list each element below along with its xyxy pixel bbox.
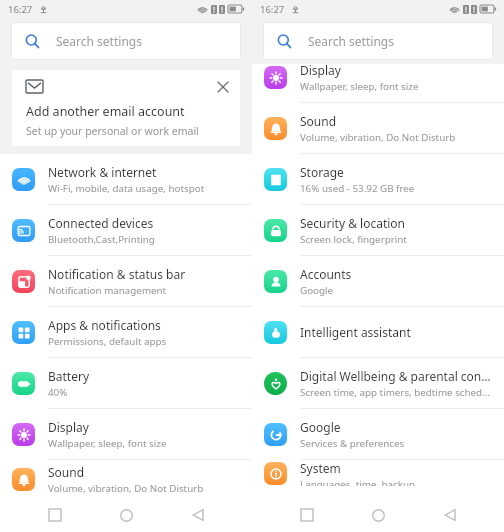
staticText: Bluetooth,Cast,Printing bbox=[48, 233, 155, 246]
button[interactable]: Search settings bbox=[11, 22, 241, 60]
staticText: Sound bbox=[300, 113, 337, 129]
button[interactable]: Display bbox=[252, 52, 504, 102]
button[interactable]: Home bbox=[109, 498, 143, 532]
staticText: Services & preferences bbox=[300, 437, 405, 450]
staticText: Google bbox=[300, 419, 341, 435]
button[interactable]: Security & location bbox=[252, 205, 504, 255]
button[interactable]: Recents bbox=[290, 498, 324, 532]
staticText: Accounts bbox=[300, 266, 352, 282]
staticText: 16:27 bbox=[8, 3, 33, 16]
button[interactable]: Accounts bbox=[252, 256, 504, 306]
staticText: Intelligent assistant bbox=[300, 324, 411, 340]
button[interactable]: Search settings bbox=[263, 22, 493, 60]
button[interactable]: Intelligent assistant bbox=[252, 307, 504, 357]
button[interactable]: Back bbox=[433, 498, 467, 532]
button[interactable]: Display bbox=[0, 409, 252, 459]
button[interactable]: Home bbox=[361, 498, 395, 532]
staticText: Wallpaper, sleep, font size bbox=[48, 437, 167, 450]
staticText: Screen time, app timers, bedtime schedul… bbox=[300, 386, 494, 399]
button[interactable]: Dismiss bbox=[212, 76, 234, 98]
staticText: 16% used - 53.92 GB free bbox=[300, 182, 415, 195]
staticText: 16:27 bbox=[260, 3, 285, 16]
button[interactable]: Apps & notifications bbox=[0, 307, 252, 357]
staticText: 40% bbox=[48, 386, 68, 399]
button[interactable]: Sound bbox=[0, 460, 252, 498]
button[interactable]: Add another email account bbox=[12, 70, 240, 146]
button[interactable]: Digital Wellbeing & parental controls bbox=[252, 358, 504, 408]
staticText: Permissions, default apps bbox=[48, 335, 167, 348]
staticText: Google bbox=[300, 284, 334, 297]
staticText: Apps & notifications bbox=[48, 317, 161, 333]
staticText: Digital Wellbeing & parental controls bbox=[300, 368, 494, 384]
staticText: Battery bbox=[48, 368, 90, 384]
button[interactable]: Recents bbox=[38, 498, 72, 532]
staticText: Notification & status bar bbox=[48, 266, 186, 282]
staticText: Volume, vibration, Do Not Disturb bbox=[300, 131, 456, 144]
button[interactable]: Connected devices bbox=[0, 205, 252, 255]
staticText: Volume, vibration, Do Not Disturb bbox=[48, 482, 204, 495]
button[interactable]: Battery bbox=[0, 358, 252, 408]
staticText: Network & internet bbox=[48, 164, 157, 180]
staticText: System bbox=[300, 460, 341, 476]
staticText: Display bbox=[300, 62, 341, 78]
button[interactable]: Sound bbox=[252, 103, 504, 153]
staticText: Notification management bbox=[48, 284, 167, 297]
staticText: Sound bbox=[48, 464, 85, 480]
button[interactable]: Notification & status bar bbox=[0, 256, 252, 306]
button[interactable]: Network & internet bbox=[0, 154, 252, 204]
staticText: Set up your personal or work email bbox=[26, 124, 199, 138]
staticText: Languages, time, backup bbox=[300, 478, 416, 486]
staticText: Search settings bbox=[56, 33, 142, 49]
button[interactable]: Google bbox=[252, 409, 504, 459]
staticText: Display bbox=[48, 419, 89, 435]
staticText: Wi-Fi, mobile, data usage, hotspot bbox=[48, 182, 205, 195]
button[interactable]: Back bbox=[181, 498, 215, 532]
staticText: Connected devices bbox=[48, 215, 154, 231]
staticText: Screen lock, fingerprint bbox=[300, 233, 407, 246]
staticText: Search settings bbox=[308, 33, 394, 49]
staticText: Security & location bbox=[300, 215, 406, 231]
staticText: Add another email account bbox=[26, 103, 185, 120]
button[interactable]: System bbox=[252, 460, 504, 486]
staticText: Storage bbox=[300, 164, 344, 180]
staticText: Wallpaper, sleep, font size bbox=[300, 80, 419, 93]
button[interactable]: Storage bbox=[252, 154, 504, 204]
